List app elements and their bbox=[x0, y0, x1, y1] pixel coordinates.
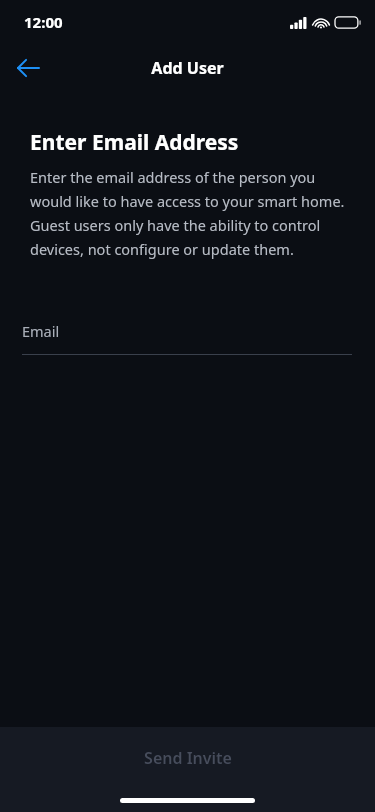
staticText: Send Invite bbox=[144, 747, 232, 769]
staticText: Enter Email Address bbox=[30, 128, 239, 157]
staticText: Add User bbox=[151, 57, 224, 79]
staticText: Enter the email address of the person yo… bbox=[30, 167, 349, 259]
button[interactable]: Email bbox=[22, 321, 352, 355]
staticText: Email bbox=[22, 321, 60, 341]
staticText: 12:00 bbox=[24, 12, 63, 32]
button[interactable]: Back bbox=[8, 48, 48, 88]
button[interactable]: Send Invite bbox=[0, 727, 375, 789]
